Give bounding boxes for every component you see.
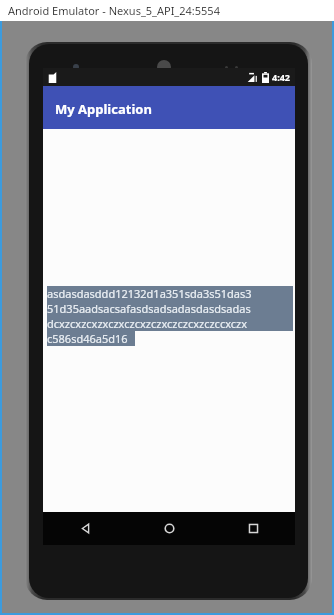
staticText: 4:42 bbox=[272, 71, 290, 83]
button[interactable]: My Application bbox=[43, 86, 295, 129]
staticText: My Application bbox=[55, 100, 152, 118]
staticText: 51d35aadsacsafasdsadsadasdasdsadas bbox=[47, 301, 251, 316]
button[interactable]: Home bbox=[127, 512, 211, 545]
staticText: dcxzcxzcxzxczxczcxzczxczczcxzczccxczx bbox=[47, 316, 248, 331]
staticText: c586sd46a5d16 bbox=[47, 331, 128, 346]
button[interactable]: Recent apps bbox=[211, 512, 295, 545]
staticText: Android Emulator - Nexus_5_API_24:5554 bbox=[8, 3, 220, 18]
button[interactable]: Back bbox=[43, 512, 127, 545]
button[interactable]: asdasdasddd12132d1a351sda3s51das3 bbox=[47, 286, 293, 346]
staticText: asdasdasddd12132d1a351sda3s51das3 bbox=[47, 286, 252, 301]
